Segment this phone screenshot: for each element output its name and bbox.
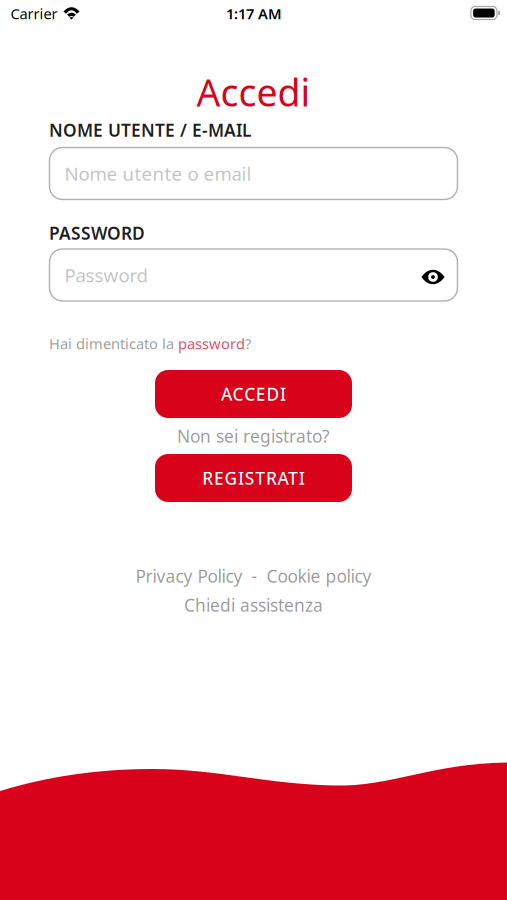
staticText: Accedi [196,67,310,117]
staticText: ? [245,334,251,353]
staticText: Nome utente o email [64,161,251,186]
button[interactable]: Privacy Policy [135,564,242,587]
staticText: password [178,334,245,353]
staticText: 1:17 AM [226,4,282,23]
staticText: - [251,564,257,587]
staticText: Privacy Policy [135,564,242,587]
staticText: Carrier [10,4,57,23]
staticText: Password [64,263,147,287]
button[interactable]: Hai dimenticato la [49,334,458,353]
staticText: Non sei registrato? [177,424,330,447]
staticText: Hai dimenticato la [49,334,178,353]
staticText: NOME UTENTE / E-MAIL [49,118,251,141]
staticText: PASSWORD [49,221,145,244]
staticText: Cookie policy [266,564,371,587]
staticText: ACCEDI [221,382,286,405]
staticText: REGISTRATI [202,466,305,489]
button[interactable]: ACCEDI [155,370,352,418]
staticText: Chiedi assistenza [184,593,323,616]
button[interactable]: Cookie policy [266,564,371,587]
button[interactable]: Chiedi assistenza [184,593,323,616]
button[interactable]: REGISTRATI [155,454,352,502]
button[interactable]: Show password [421,253,457,297]
